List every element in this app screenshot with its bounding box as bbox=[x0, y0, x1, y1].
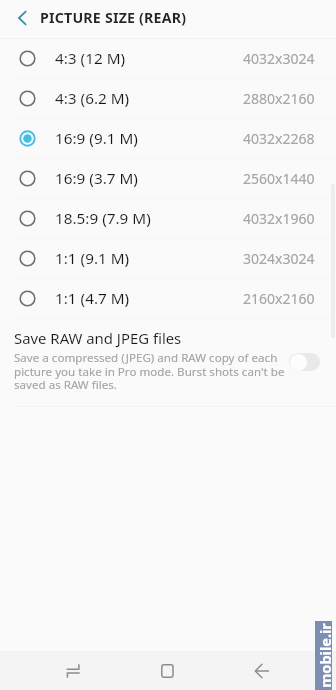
staticText: 4:3 (6.2 M) bbox=[55, 88, 130, 109]
button[interactable]: Recent apps bbox=[51, 651, 95, 690]
staticText: 2880x2160 bbox=[243, 89, 315, 108]
button[interactable]: 16:9 (3.7 M) bbox=[0, 159, 336, 198]
button[interactable]: 18.5:9 (7.9 M) bbox=[0, 199, 336, 238]
staticText: 16:9 (9.1 M) bbox=[55, 128, 138, 149]
staticText: 3024x3024 bbox=[243, 249, 315, 268]
staticText: 4032x3024 bbox=[243, 49, 315, 68]
button[interactable]: 4:3 (6.2 M) bbox=[0, 79, 336, 118]
button[interactable]: 1:1 (4.7 M) bbox=[0, 279, 336, 318]
staticText: Save a compressed (JPEG) and RAW copy of… bbox=[14, 350, 290, 392]
button[interactable]: Save RAW and JPEG files bbox=[0, 319, 336, 406]
staticText: 2160x2160 bbox=[243, 289, 315, 308]
button[interactable]: Home bbox=[146, 651, 190, 690]
staticText: 4032x2268 bbox=[243, 129, 315, 148]
staticText: 1:1 (9.1 M) bbox=[55, 248, 130, 269]
staticText: 4032x1960 bbox=[243, 209, 315, 228]
staticText: mobile.ir bbox=[315, 623, 332, 688]
button[interactable]: 4:3 (12 M) bbox=[0, 39, 336, 78]
button[interactable]: Save RAW and JPEG files toggle bbox=[289, 353, 320, 371]
button[interactable]: 1:1 (9.1 M) bbox=[0, 239, 336, 278]
staticText: 18.5:9 (7.9 M) bbox=[55, 208, 151, 229]
button[interactable]: 16:9 (9.1 M) bbox=[0, 119, 336, 158]
button[interactable]: Back bbox=[240, 651, 284, 690]
staticText: 16:9 (3.7 M) bbox=[55, 168, 138, 189]
staticText: PICTURE SIZE (REAR) bbox=[40, 8, 187, 27]
staticText: 1:1 (4.7 M) bbox=[55, 288, 130, 309]
button[interactable]: Navigate up bbox=[0, 0, 40, 38]
staticText: 4:3 (12 M) bbox=[55, 48, 126, 69]
staticText: Save RAW and JPEG files bbox=[14, 328, 182, 348]
staticText: 2560x1440 bbox=[243, 169, 315, 188]
